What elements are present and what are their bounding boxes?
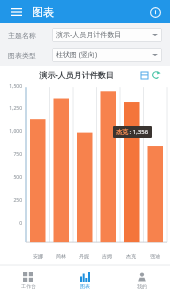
staticText: 图表 [80,283,90,289]
staticText: 杰克 [126,253,136,259]
staticText: 吉姆 [102,253,112,259]
staticText: 简林 [56,253,66,259]
staticText: 1,000 [9,128,22,135]
staticText: 柱状图 (竖向) [56,50,98,60]
staticText: 图表 [32,5,54,19]
button[interactable]: 我的 [113,265,170,295]
button[interactable]: 图表类型 [8,48,162,62]
button[interactable]: Refresh [150,69,162,81]
staticText: 安娜 [33,253,43,259]
staticText: 演示-人员月计件数目 [56,30,122,40]
staticText: 750 [13,151,22,158]
staticText: 1,500 [9,83,22,90]
button[interactable]: 工作台 [0,265,56,295]
staticText: 强迪 [150,253,160,259]
staticText: 我的 [137,283,147,289]
staticText: 丹妮 [79,253,89,259]
staticText: : 1,356 [128,128,149,136]
button[interactable]: 主题名称 [8,28,162,42]
button[interactable]: Menu [8,4,24,20]
staticText: 演示-人员月计件数目 [39,69,114,80]
staticText: 工作台 [21,283,36,289]
staticText: 0 [19,220,22,227]
staticText: 主题名称 [8,31,52,40]
staticText: 杰克 [116,128,128,136]
staticText: 500 [13,174,22,181]
button[interactable]: Table view [138,69,150,81]
staticText: 图表类型 [8,51,52,60]
staticText: 1,250 [9,105,22,112]
button[interactable]: 图表 [56,265,113,295]
staticText: 250 [13,197,22,204]
button[interactable]: Info [147,4,163,20]
